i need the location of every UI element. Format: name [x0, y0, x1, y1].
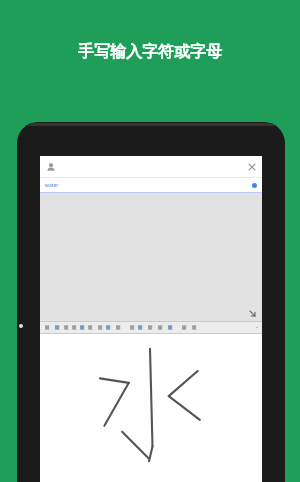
button[interactable]: Close [245, 160, 258, 173]
button[interactable]: Account [44, 160, 57, 173]
staticText: water [45, 182, 59, 189]
button[interactable]: water [40, 178, 262, 192]
staticText: 手写输入字符或字母 [0, 42, 300, 62]
button[interactable]: Handwriting input area [40, 334, 262, 482]
